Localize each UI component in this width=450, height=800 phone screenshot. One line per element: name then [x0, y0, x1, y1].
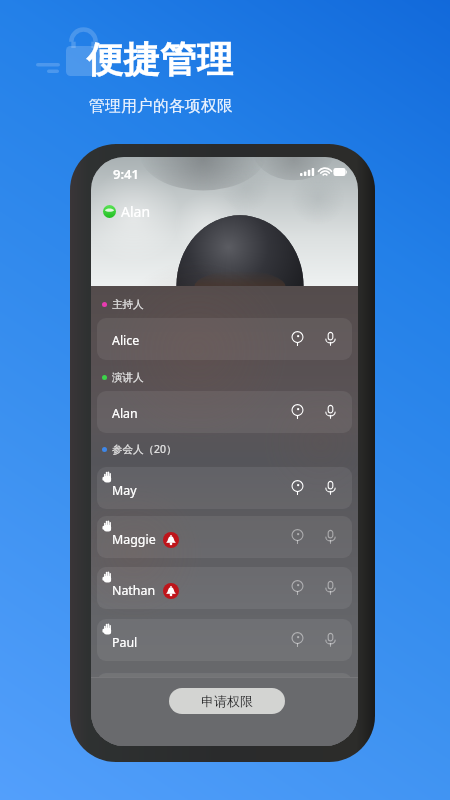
staticText: 参会人（20） [112, 442, 177, 456]
button[interactable]: Microphone [318, 400, 342, 424]
staticText: Alan [112, 405, 138, 422]
button[interactable]: Camera [285, 327, 309, 351]
button[interactable]: Paul [97, 619, 352, 661]
button[interactable]: Microphone [318, 476, 342, 500]
button[interactable]: Alice [97, 318, 352, 360]
staticText: May [112, 482, 137, 499]
button[interactable]: Maggie [97, 516, 352, 558]
staticText: Alice [112, 332, 140, 349]
button[interactable] [97, 673, 352, 715]
button[interactable]: Alan [97, 391, 352, 433]
button[interactable]: Microphone [318, 327, 342, 351]
button[interactable]: Camera [285, 628, 309, 652]
button[interactable]: Camera [285, 476, 309, 500]
button[interactable]: May [97, 467, 352, 509]
staticText: Maggie [112, 531, 156, 548]
button[interactable]: Microphone [318, 576, 342, 600]
button[interactable]: Camera [285, 576, 309, 600]
button[interactable]: Camera [285, 400, 309, 424]
staticText: Alan [121, 202, 151, 221]
staticText: 申请权限 [201, 693, 253, 709]
staticText: Paul [112, 634, 138, 651]
staticText: 主持人 [112, 298, 144, 311]
staticText: 演讲人 [112, 371, 144, 384]
button[interactable]: Microphone [318, 628, 342, 652]
button[interactable]: Microphone [318, 525, 342, 549]
button[interactable]: Camera [285, 525, 309, 549]
button[interactable]: 申请权限 [169, 688, 285, 714]
staticText: 9:41 [113, 165, 139, 183]
staticText: Nathan [112, 582, 156, 599]
staticText: 管理用户的各项权限 [89, 96, 233, 116]
button[interactable]: Nathan [97, 567, 352, 609]
staticText: 便捷管理 [87, 37, 234, 82]
